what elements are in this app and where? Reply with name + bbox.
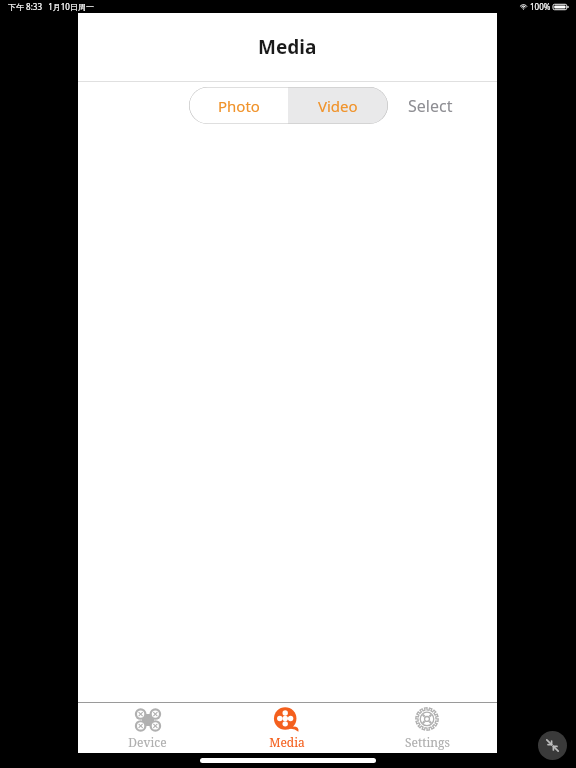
button[interactable]: Select bbox=[408, 87, 453, 124]
staticText: 下午 8:33 1月10日周一 bbox=[8, 1, 94, 12]
staticText: Video bbox=[318, 96, 358, 116]
button[interactable]: Minimize bbox=[538, 731, 567, 760]
button[interactable]: Video bbox=[288, 87, 388, 124]
staticText: Media bbox=[269, 734, 305, 750]
staticText: Settings bbox=[405, 734, 450, 750]
button[interactable]: Settings bbox=[357, 703, 497, 753]
staticText: Device bbox=[128, 734, 167, 750]
staticText: Photo bbox=[218, 96, 260, 116]
staticText: Select bbox=[408, 95, 453, 117]
button[interactable]: Photo bbox=[189, 87, 288, 124]
staticText: 100% bbox=[530, 1, 551, 12]
button[interactable]: Device bbox=[78, 703, 217, 753]
button[interactable]: Media bbox=[217, 703, 357, 753]
staticText: Media bbox=[258, 34, 317, 60]
